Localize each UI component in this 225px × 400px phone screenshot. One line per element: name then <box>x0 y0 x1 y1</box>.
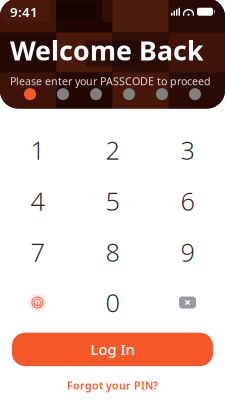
staticText: 9 <box>180 235 194 269</box>
staticText: 5 <box>105 184 119 218</box>
staticText: 8 <box>105 235 119 269</box>
button[interactable]: 1 <box>0 124 75 175</box>
button[interactable]: 4 <box>0 175 75 226</box>
button[interactable]: Forgot your PIN? <box>57 374 168 396</box>
staticText: 6 <box>180 184 194 218</box>
button[interactable]: Log In <box>12 333 213 366</box>
button[interactable]: 3 <box>150 124 225 175</box>
staticText: 7 <box>30 235 44 269</box>
button[interactable]: 6 <box>150 175 225 226</box>
staticText: 9:41 <box>10 3 38 21</box>
staticText: Forgot your PIN? <box>67 378 158 392</box>
staticText: Log In <box>90 340 134 359</box>
button[interactable]: 5 <box>75 175 150 226</box>
button[interactable]: 2 <box>75 124 150 175</box>
staticText: Please enter your PASSCODE to proceed <box>10 74 211 88</box>
staticText: 4 <box>30 184 44 218</box>
staticText: 2 <box>105 133 119 167</box>
staticText: 3 <box>180 133 194 167</box>
button[interactable]: Delete <box>150 277 225 327</box>
button[interactable]: 7 <box>0 226 75 277</box>
staticText: 1 <box>30 133 44 167</box>
button[interactable]: 8 <box>75 226 150 277</box>
button[interactable]: 9 <box>150 226 225 277</box>
staticText: Welcome Back <box>10 33 204 68</box>
button[interactable]: 0 <box>75 277 150 327</box>
button[interactable]: Unlock with fingerprint <box>0 277 75 327</box>
staticText: 0 <box>105 286 119 319</box>
